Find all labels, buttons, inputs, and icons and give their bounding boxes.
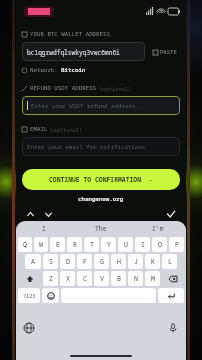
staticText: Bitcoin xyxy=(61,66,86,74)
button[interactable]: W xyxy=(34,237,48,252)
staticText: A xyxy=(31,257,35,266)
staticText: R xyxy=(73,240,77,249)
staticText: D xyxy=(66,257,70,266)
staticText: I xyxy=(141,240,145,249)
staticText: B xyxy=(117,274,121,283)
staticText: O xyxy=(158,240,162,249)
button[interactable]: Enter xyxy=(158,288,184,303)
button[interactable]: ?123 xyxy=(18,288,40,303)
staticText: N xyxy=(134,274,138,283)
staticText: EMAIL xyxy=(30,125,48,133)
button[interactable]: I xyxy=(135,237,150,252)
button[interactable]: Next field xyxy=(44,210,53,219)
button[interactable]: PASTE xyxy=(150,45,180,59)
staticText: Q xyxy=(23,240,27,249)
button[interactable]: Done xyxy=(166,209,176,219)
button[interactable]: I xyxy=(16,221,72,236)
staticText: M xyxy=(151,274,155,283)
button[interactable]: M xyxy=(145,271,160,286)
staticText: Enter your USDT refund address... xyxy=(31,102,146,110)
button[interactable]: S xyxy=(43,254,58,269)
staticText: ?123 xyxy=(23,292,36,299)
staticText: (optional) xyxy=(50,126,83,133)
button[interactable]: J xyxy=(128,254,143,269)
button[interactable]: G xyxy=(94,254,109,269)
button[interactable]: Z xyxy=(43,271,58,286)
button[interactable]: U xyxy=(118,237,133,252)
staticText: Enter your email for notifications xyxy=(27,143,146,151)
staticText: (optional) xyxy=(99,85,132,92)
button[interactable]: R xyxy=(67,237,82,252)
staticText: X xyxy=(66,274,70,283)
staticText: H xyxy=(117,257,121,266)
button[interactable]: Emoji xyxy=(42,288,59,303)
staticText: CONTINUE TO CONFIRMATION → xyxy=(49,175,153,184)
button[interactable]: F xyxy=(77,254,92,269)
staticText: changenow.org xyxy=(78,195,124,203)
staticText: I xyxy=(42,224,46,233)
staticText: G xyxy=(100,257,104,266)
staticText: T xyxy=(90,240,94,249)
staticText: F xyxy=(83,257,87,266)
button[interactable]: I'm xyxy=(129,221,186,236)
staticText: V xyxy=(100,274,104,283)
button[interactable]: Q xyxy=(18,237,32,252)
button[interactable]: Change keyboard xyxy=(24,323,34,333)
staticText: Z xyxy=(49,274,53,283)
button[interactable]: B xyxy=(111,271,126,286)
button[interactable]: Previous field xyxy=(26,210,35,219)
button[interactable]: D xyxy=(60,254,75,269)
button[interactable]: bc1qgrwdfqlswkyq3vwc6mn6i xyxy=(22,42,145,61)
staticText: P xyxy=(175,240,179,249)
staticText: L xyxy=(168,257,172,266)
button[interactable]: Enter your email for notifications xyxy=(22,137,180,156)
button[interactable]: Y xyxy=(101,237,116,252)
button[interactable]: N xyxy=(128,271,143,286)
staticText: Y xyxy=(107,240,111,249)
button[interactable]: O xyxy=(152,237,167,252)
button[interactable]: H xyxy=(111,254,126,269)
staticText: Network: xyxy=(30,66,58,74)
staticText: REFUND USDT ADDRESS xyxy=(30,84,97,92)
staticText: E xyxy=(56,240,60,249)
button[interactable]: Shift xyxy=(18,271,41,286)
staticText: The xyxy=(95,224,107,233)
button[interactable]: T xyxy=(84,237,99,252)
staticText: PASTE xyxy=(160,48,177,56)
staticText: YOUR BTC WALLET ADDRESS xyxy=(30,30,110,38)
staticText: S xyxy=(49,257,53,266)
staticText: K xyxy=(151,257,155,266)
staticText: W xyxy=(39,240,43,249)
button[interactable]: Backspace xyxy=(162,271,184,286)
button[interactable]: A xyxy=(25,254,41,269)
staticText: U xyxy=(124,240,128,249)
button[interactable]: CONTINUE TO CONFIRMATION → xyxy=(22,169,180,190)
button[interactable]: K xyxy=(145,254,160,269)
button[interactable]: X xyxy=(60,271,75,286)
button[interactable]: The xyxy=(72,221,129,236)
button[interactable]: P xyxy=(169,237,184,252)
button[interactable]: Voice input xyxy=(168,323,178,333)
staticText: J xyxy=(134,257,138,266)
staticText: C xyxy=(83,274,87,283)
staticText: bc1qgrwdfqlswkyq3vwc6mn6i xyxy=(27,48,120,56)
button[interactable]: V xyxy=(94,271,109,286)
button[interactable]: C xyxy=(77,271,92,286)
button[interactable]: L xyxy=(162,254,177,269)
button[interactable]: Enter your USDT refund address... xyxy=(22,96,180,115)
staticText: I'm xyxy=(152,224,164,233)
button[interactable]: E xyxy=(50,237,65,252)
